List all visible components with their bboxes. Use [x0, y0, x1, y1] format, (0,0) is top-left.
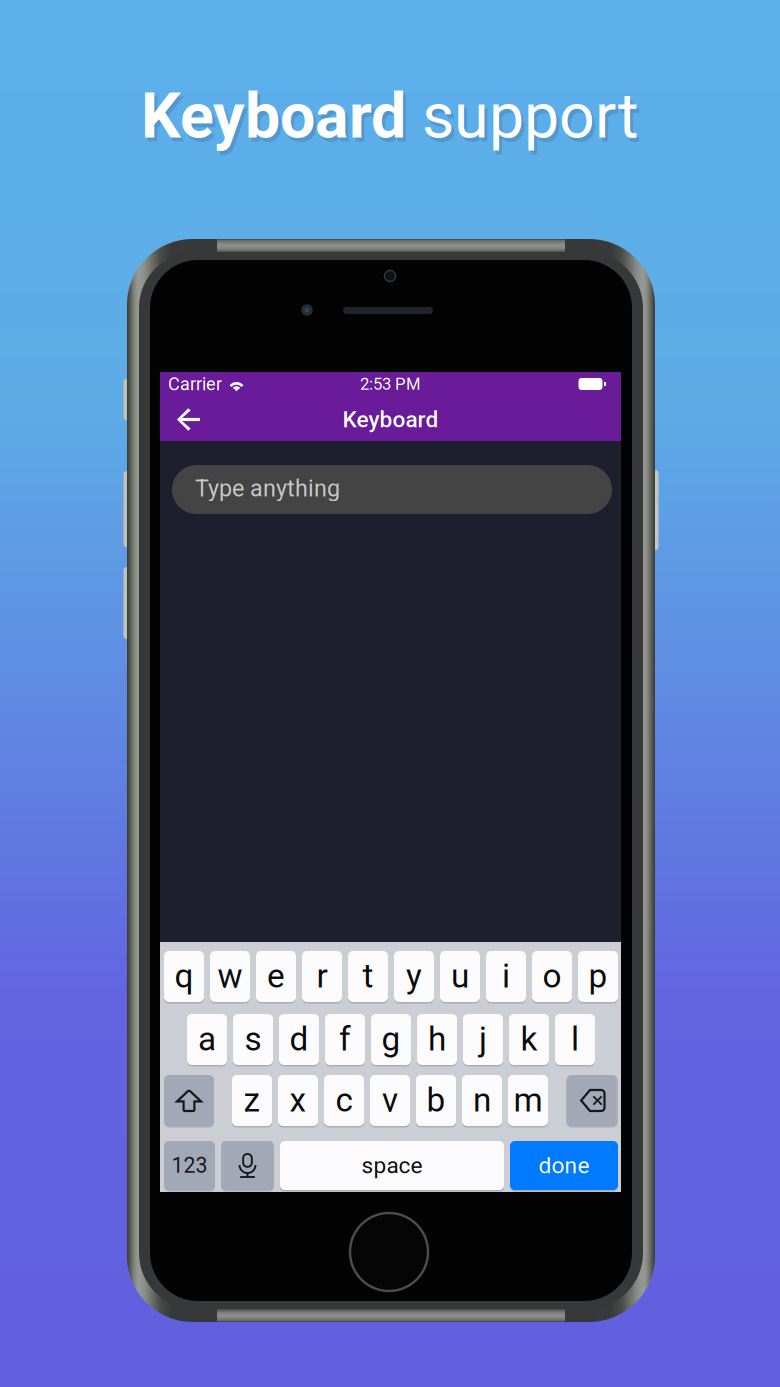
- staticText: g: [381, 1019, 400, 1059]
- staticText: 123: [171, 1153, 207, 1178]
- staticText: k: [520, 1019, 537, 1059]
- staticText: 2:53 PM: [360, 374, 421, 394]
- staticText: space: [361, 1152, 422, 1179]
- button[interactable]: space: [280, 1140, 504, 1191]
- staticText: l: [571, 1019, 579, 1059]
- button[interactable]: Delete: [566, 1074, 617, 1127]
- staticText: a: [198, 1019, 216, 1059]
- staticText: e: [267, 956, 285, 996]
- button[interactable]: a: [187, 1013, 227, 1066]
- staticText: done: [538, 1152, 589, 1179]
- button[interactable]: e: [256, 950, 296, 1003]
- button[interactable]: h: [417, 1013, 457, 1066]
- button[interactable]: k: [509, 1013, 549, 1066]
- staticText: p: [588, 956, 607, 996]
- staticText: q: [174, 956, 193, 996]
- button[interactable]: o: [532, 950, 572, 1003]
- staticText: support: [422, 79, 639, 153]
- button[interactable]: f: [325, 1013, 365, 1066]
- staticText: h: [428, 1019, 446, 1059]
- button[interactable]: r: [302, 950, 342, 1003]
- staticText: Keyboard: [141, 79, 422, 153]
- button[interactable]: done: [510, 1140, 618, 1191]
- button[interactable]: y: [394, 950, 434, 1003]
- staticText: m: [513, 1080, 542, 1120]
- staticText: s: [244, 1019, 261, 1059]
- staticText: u: [451, 956, 469, 996]
- button[interactable]: v: [370, 1074, 410, 1127]
- button[interactable]: u: [440, 950, 480, 1003]
- button[interactable]: t: [348, 950, 388, 1003]
- staticText: Keyboard: [144, 83, 425, 157]
- staticText: w: [217, 956, 242, 996]
- staticText: i: [502, 956, 510, 996]
- button[interactable]: Shift: [164, 1074, 214, 1127]
- button[interactable]: m: [508, 1074, 548, 1127]
- staticText: Carrier: [168, 373, 222, 395]
- button[interactable]: d: [279, 1013, 319, 1066]
- staticText: j: [479, 1019, 487, 1059]
- button[interactable]: g: [371, 1013, 411, 1066]
- button[interactable]: 123: [164, 1140, 215, 1191]
- staticText: Keyboard: [342, 406, 438, 433]
- button[interactable]: l: [555, 1013, 595, 1066]
- staticText: d: [289, 1019, 308, 1059]
- staticText: x: [289, 1080, 306, 1120]
- staticText: y: [406, 956, 422, 996]
- button[interactable]: w: [210, 950, 250, 1003]
- button[interactable]: Home: [350, 1213, 428, 1291]
- button[interactable]: Type anything: [172, 465, 612, 514]
- button[interactable]: z: [232, 1074, 272, 1127]
- button[interactable]: n: [462, 1074, 502, 1127]
- staticText: Type anything: [195, 475, 340, 502]
- staticText: r: [316, 956, 327, 996]
- staticText: c: [335, 1080, 352, 1120]
- staticText: z: [243, 1080, 260, 1120]
- button[interactable]: q: [164, 950, 204, 1003]
- staticText: v: [382, 1080, 398, 1120]
- button[interactable]: Back: [160, 398, 216, 441]
- button[interactable]: Dictate: [221, 1140, 274, 1191]
- button[interactable]: i: [486, 950, 526, 1003]
- button[interactable]: c: [324, 1074, 364, 1127]
- button[interactable]: p: [578, 950, 618, 1003]
- button[interactable]: x: [278, 1074, 318, 1127]
- button[interactable]: j: [463, 1013, 503, 1066]
- staticText: o: [542, 956, 561, 996]
- staticText: f: [339, 1019, 351, 1059]
- button[interactable]: s: [233, 1013, 273, 1066]
- staticText: support: [425, 83, 642, 157]
- staticText: t: [362, 956, 373, 996]
- staticText: b: [426, 1080, 445, 1120]
- staticText: n: [473, 1080, 491, 1120]
- button[interactable]: b: [416, 1074, 456, 1127]
